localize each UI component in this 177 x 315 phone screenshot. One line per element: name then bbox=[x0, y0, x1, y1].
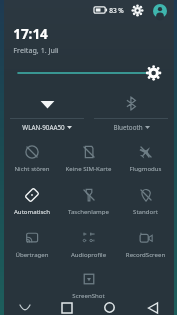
button[interactable]: WLAN-90AA50 bbox=[10, 90, 84, 132]
button[interactable]: Recents bbox=[46, 300, 88, 315]
button[interactable]: Übertragen bbox=[4, 227, 60, 259]
staticText: Audioprofile bbox=[60, 250, 117, 258]
staticText: RecordScreen bbox=[117, 250, 174, 258]
button[interactable]: Settings bbox=[131, 4, 144, 17]
staticText: Keine SIM-Karte bbox=[60, 164, 117, 172]
button[interactable]: Taschenlampe bbox=[60, 184, 117, 216]
staticText: Standort bbox=[117, 207, 174, 215]
staticText: Flugmodus bbox=[117, 164, 174, 172]
button[interactable]: Back bbox=[131, 300, 174, 315]
button[interactable]: Audioprofile bbox=[60, 227, 117, 259]
staticText: Automatisch drehen bbox=[4, 207, 60, 215]
button[interactable]: Flugmodus bbox=[117, 141, 174, 173]
staticText: Freitag, 1. Juli bbox=[13, 45, 59, 55]
button[interactable]: Bluetooth bbox=[94, 90, 168, 132]
button[interactable]: Brightness bbox=[4, 65, 174, 81]
staticText: 17:14 bbox=[13, 25, 48, 43]
staticText: Übertragen bbox=[4, 250, 60, 258]
button[interactable]: User bbox=[152, 3, 167, 18]
button[interactable]: ScreenShot bbox=[60, 268, 117, 300]
button[interactable]: Nicht stören bbox=[4, 141, 60, 173]
staticText: Nicht stören bbox=[4, 164, 60, 172]
button[interactable]: Standort bbox=[117, 184, 174, 216]
staticText: WLAN-90AA50 bbox=[22, 123, 65, 132]
button[interactable]: Automatisch drehen bbox=[4, 184, 60, 216]
staticText: ScreenShot bbox=[60, 291, 117, 299]
button[interactable]: Collapse bbox=[4, 300, 46, 315]
staticText: 83 % bbox=[109, 6, 124, 15]
staticText: Taschenlampe bbox=[60, 207, 117, 215]
button[interactable]: Home bbox=[88, 300, 131, 315]
button[interactable]: Keine SIM-Karte bbox=[60, 141, 117, 173]
staticText: Bluetooth bbox=[113, 123, 143, 132]
button[interactable]: RecordScreen bbox=[117, 227, 174, 259]
